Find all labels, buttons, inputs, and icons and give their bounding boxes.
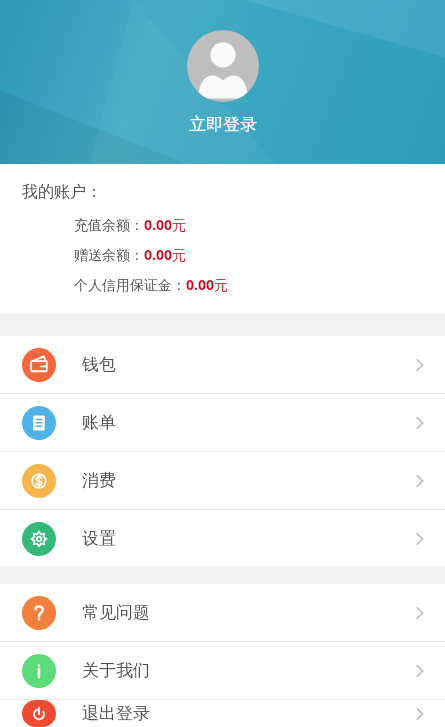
staticText: 设置 <box>82 528 116 549</box>
staticText: 我的账户： <box>22 182 102 202</box>
staticText: 充值余额：0.00元 <box>74 215 186 234</box>
staticText: 常见问题 <box>82 602 150 623</box>
button[interactable]: 关于我们 <box>0 642 445 699</box>
button[interactable]: 账单 <box>0 394 445 451</box>
staticText: 账单 <box>82 412 116 433</box>
staticText: 退出登录 <box>82 703 150 724</box>
button[interactable]: 立即登录 <box>0 0 445 164</box>
staticText: 消费 <box>82 470 116 491</box>
staticText: 钱包 <box>82 354 116 375</box>
button[interactable]: 消费 <box>0 452 445 509</box>
staticText: 关于我们 <box>82 660 150 681</box>
button[interactable]: 常见问题 <box>0 584 445 641</box>
staticText: 个人信用保证金：0.00元 <box>74 275 228 294</box>
button[interactable]: 设置 <box>0 510 445 567</box>
staticText: 赠送余额：0.00元 <box>74 245 186 264</box>
button[interactable]: 钱包 <box>0 336 445 393</box>
button[interactable]: 退出登录 <box>0 700 445 727</box>
staticText: 立即登录 <box>189 114 257 135</box>
